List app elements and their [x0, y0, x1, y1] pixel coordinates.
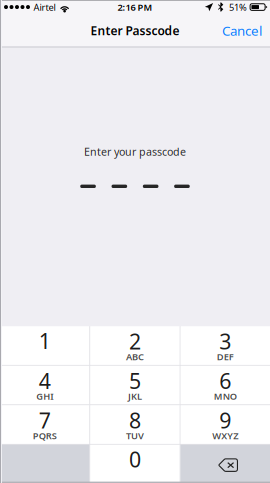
staticText: Airtel — [33, 1, 55, 13]
staticText: 1 — [39, 326, 51, 355]
button[interactable]: 2 — [90, 326, 180, 365]
staticText: 2:16 PM — [117, 1, 152, 13]
staticText: ABC — [126, 350, 144, 363]
button[interactable]: 4 — [0, 366, 89, 404]
staticText: 8 — [129, 406, 141, 434]
staticText: 4 — [39, 366, 51, 395]
staticText: DEF — [217, 350, 234, 363]
staticText: Enter your passcode — [84, 144, 186, 159]
button[interactable]: 8 — [90, 405, 180, 444]
staticText: JKL — [128, 390, 142, 402]
button[interactable]: 0 — [90, 445, 180, 483]
staticText: Cancel — [222, 22, 262, 39]
button[interactable]: 9 — [181, 405, 270, 444]
staticText: MNO — [214, 390, 237, 402]
staticText: 0 — [129, 445, 141, 473]
button[interactable]: 1 — [0, 326, 89, 365]
staticText: PQRS — [33, 429, 57, 442]
staticText: 5 — [129, 366, 141, 395]
button[interactable]: 3 — [181, 326, 270, 365]
button[interactable]: Delete — [181, 445, 270, 483]
button[interactable]: 5 — [90, 366, 180, 404]
staticText: 6 — [219, 366, 231, 395]
staticText: WXYZ — [212, 429, 238, 442]
staticText: 9 — [219, 406, 231, 434]
staticText: Enter Passcode — [90, 23, 179, 38]
staticText: 2 — [129, 327, 141, 355]
button[interactable]: 6 — [181, 366, 270, 404]
staticText: GHI — [36, 390, 53, 402]
staticText: 51% — [229, 1, 247, 13]
staticText: 3 — [219, 327, 231, 355]
button[interactable]: 7 — [0, 405, 89, 444]
button[interactable]: Cancel — [213, 14, 270, 47]
staticText: 7 — [39, 406, 51, 434]
staticText: TUV — [126, 429, 144, 442]
